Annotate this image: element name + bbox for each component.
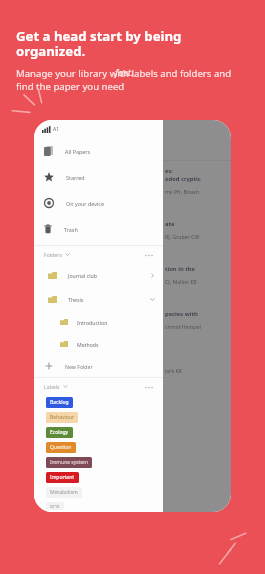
- staticText: New Folder: [65, 363, 93, 370]
- staticText: Manage your library with labels and fold…: [16, 67, 232, 93]
- button[interactable]: tion in the: [163, 259, 231, 304]
- staticText: chmid-Hempel: [165, 323, 201, 330]
- button[interactable]: Question: [46, 442, 76, 453]
- staticText: Methods: [77, 341, 99, 348]
- staticText: Journal club: [68, 272, 97, 279]
- button[interactable]: Thesis: [34, 287, 163, 311]
- button[interactable]: Behaviour: [46, 412, 78, 423]
- button[interactable]: Introduction: [34, 311, 163, 333]
- button[interactable]: Trash: [34, 216, 163, 242]
- staticText: All Papers: [65, 148, 91, 155]
- button[interactable]: New Folder: [34, 355, 163, 377]
- staticText: tion in the: [165, 265, 195, 273]
- staticText: Labels: [44, 383, 60, 390]
- staticText: Thesis: [68, 296, 84, 303]
- button[interactable]: pecies with: [163, 304, 231, 349]
- other: Collapse Labels: [63, 384, 68, 389]
- staticText: Immune system: [50, 459, 88, 466]
- staticText: Backlog: [50, 399, 69, 406]
- button[interactable]: Add new: [163, 486, 231, 512]
- button[interactable]: Immune system: [46, 457, 92, 468]
- staticText: ms PH, Brown: [165, 188, 200, 195]
- staticText: Starred: [66, 174, 85, 181]
- staticText: Behaviour: [50, 414, 74, 421]
- button[interactable]: Ecology: [46, 427, 73, 438]
- staticText: Folders: [44, 251, 62, 258]
- button[interactable]: Starred: [34, 164, 163, 190]
- staticText: On your device: [66, 200, 104, 207]
- button[interactable]: On your device: [34, 190, 163, 216]
- button[interactable]: [163, 120, 231, 512]
- button[interactable]: Methods: [34, 333, 163, 355]
- button[interactable]: Journal club: [34, 263, 163, 287]
- button[interactable]: Folders options: [143, 249, 155, 261]
- staticText: fast.: [115, 66, 134, 79]
- button[interactable]: All Papers: [34, 138, 163, 164]
- staticText: Trash: [64, 226, 78, 233]
- staticText: pecies with: [165, 310, 198, 318]
- staticText: Metabolism: [50, 489, 78, 496]
- staticText: RJ, Gruber CW: [165, 233, 200, 240]
- button[interactable]: Backlog: [46, 397, 73, 408]
- button[interactable]: lark KK: [163, 361, 231, 393]
- staticText: Get a head start by being organized.: [16, 27, 251, 60]
- staticText: PCR: [50, 504, 60, 508]
- button[interactable]: Important: [46, 472, 79, 483]
- other: Collapse Folders: [65, 252, 70, 257]
- button[interactable]: Metabolism: [46, 487, 82, 498]
- staticText: Question: [50, 444, 72, 451]
- staticText: ate: [165, 220, 175, 228]
- button[interactable]: es: oded cryptic: [163, 161, 231, 214]
- staticText: CJ, Mallon EB: [165, 278, 197, 285]
- staticText: es: oded cryptic: [165, 167, 201, 183]
- button[interactable]: PCR: [46, 502, 64, 510]
- staticText: lark KK: [165, 367, 182, 374]
- staticText: Ecology: [50, 429, 69, 436]
- button[interactable]: Labels options: [143, 381, 155, 393]
- staticText: Important: [50, 474, 75, 481]
- staticText: Introduction: [77, 319, 108, 326]
- staticText: A1: [53, 126, 60, 133]
- button[interactable]: ate: [163, 214, 231, 259]
